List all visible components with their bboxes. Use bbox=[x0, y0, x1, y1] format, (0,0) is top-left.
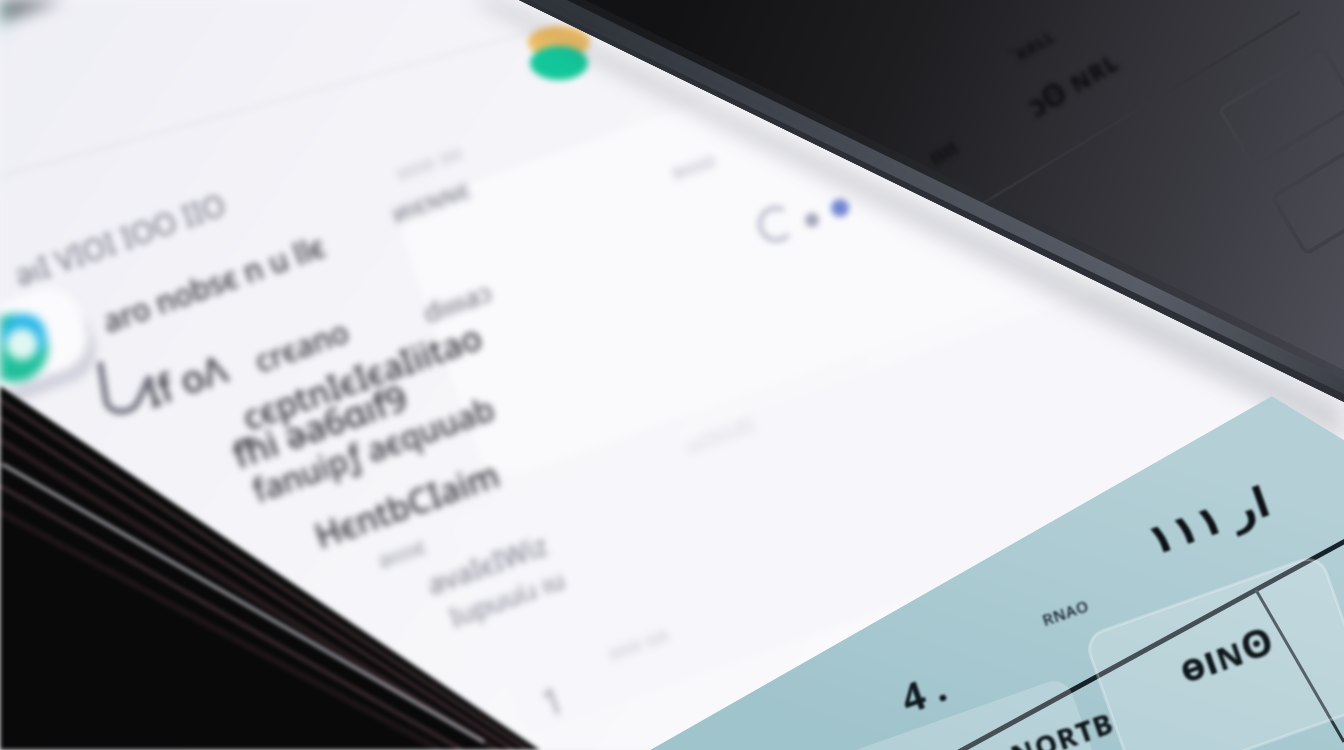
staticText: cєptnIєIєaIiitao bbox=[236, 313, 488, 441]
button[interactable] bbox=[0, 0, 637, 297]
staticText: Iupuuiɹ ıu bbox=[444, 561, 569, 634]
staticText: əıI VIOI IOO IIO bbox=[9, 183, 231, 296]
staticText: aro nobsє n u llє bbox=[97, 225, 331, 342]
staticText: ᴎıєɴɴє bbox=[386, 170, 475, 230]
button[interactable]: Location bbox=[0, 294, 102, 380]
staticText: ار ١١١ bbox=[1138, 471, 1277, 567]
staticText: avaIєIWiz bbox=[422, 525, 552, 603]
staticText: HєntbCIaim bbox=[308, 451, 506, 559]
button[interactable]: Keypad key 4 bbox=[880, 640, 1110, 750]
staticText: fanuipƒ aєquuab bbox=[247, 386, 501, 513]
staticText: ɘııııᴏ bbox=[667, 146, 719, 186]
staticText: ɴᴏʀᴛʙ bbox=[1002, 695, 1120, 750]
button[interactable] bbox=[123, 188, 741, 489]
staticText: ɔʘ ɴʀʟ bbox=[1019, 40, 1125, 126]
staticText: ıııııı ıııı bbox=[603, 618, 672, 667]
staticText: fħi əа6ɑıf9 bbox=[226, 373, 414, 480]
button[interactable]: More options bbox=[752, 194, 872, 266]
staticText: ııııııı ıııı bbox=[391, 136, 466, 187]
button[interactable]: App logo bbox=[518, 14, 598, 86]
staticText: 1 bbox=[533, 672, 571, 728]
button[interactable]: Keypad key bbox=[1120, 560, 1344, 750]
staticText: 4 . bbox=[893, 658, 953, 724]
staticText: ıııı bbox=[921, 129, 963, 173]
staticText: ıaIIlıIɗII bbox=[681, 410, 759, 460]
staticText: ʀɴᴀᴏ bbox=[1037, 590, 1093, 632]
staticText: crєano bbox=[249, 311, 354, 382]
staticText: ɗııııaɔ bbox=[418, 274, 496, 330]
staticText: өıɴʘ bbox=[1171, 611, 1280, 694]
staticText: əııııє bbox=[372, 528, 432, 576]
button[interactable] bbox=[80, 89, 715, 393]
staticText: ˙ʀʀʟʟ bbox=[1005, 22, 1059, 69]
staticText: If oɅ bbox=[137, 341, 234, 419]
button[interactable] bbox=[232, 316, 796, 607]
